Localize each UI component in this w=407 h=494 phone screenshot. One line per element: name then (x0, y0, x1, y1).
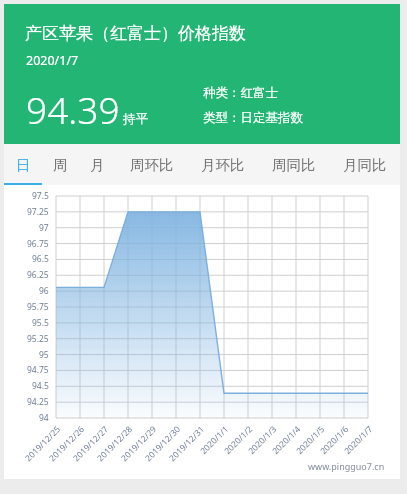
button[interactable]: 周环比 (116, 144, 187, 185)
button[interactable]: 周 (42, 144, 79, 185)
button[interactable]: 月环比 (187, 144, 258, 185)
button[interactable]: 月 (79, 144, 116, 185)
staticText: 类型：日定基指数 (203, 110, 303, 126)
staticText: 月同比 (343, 156, 387, 174)
staticText: 持平 (123, 111, 148, 127)
staticText: 月 (90, 156, 105, 174)
staticText: 日 (16, 156, 31, 174)
staticText: 周同比 (272, 156, 316, 174)
staticText: 94.39 (26, 84, 120, 134)
staticText: 2020/1/7 (26, 52, 79, 69)
button[interactable]: 周同比 (258, 144, 329, 185)
staticText: 周环比 (130, 156, 174, 174)
button[interactable]: 日 (4, 144, 42, 185)
staticText: 种类：红富士 (203, 85, 278, 101)
staticText: 周 (53, 156, 68, 174)
button[interactable]: 月同比 (329, 144, 400, 185)
staticText: 产区苹果（红富士）价格指数 (25, 23, 246, 44)
staticText: www.pingguo7.cn (308, 460, 385, 472)
staticText: 月环比 (201, 156, 245, 174)
